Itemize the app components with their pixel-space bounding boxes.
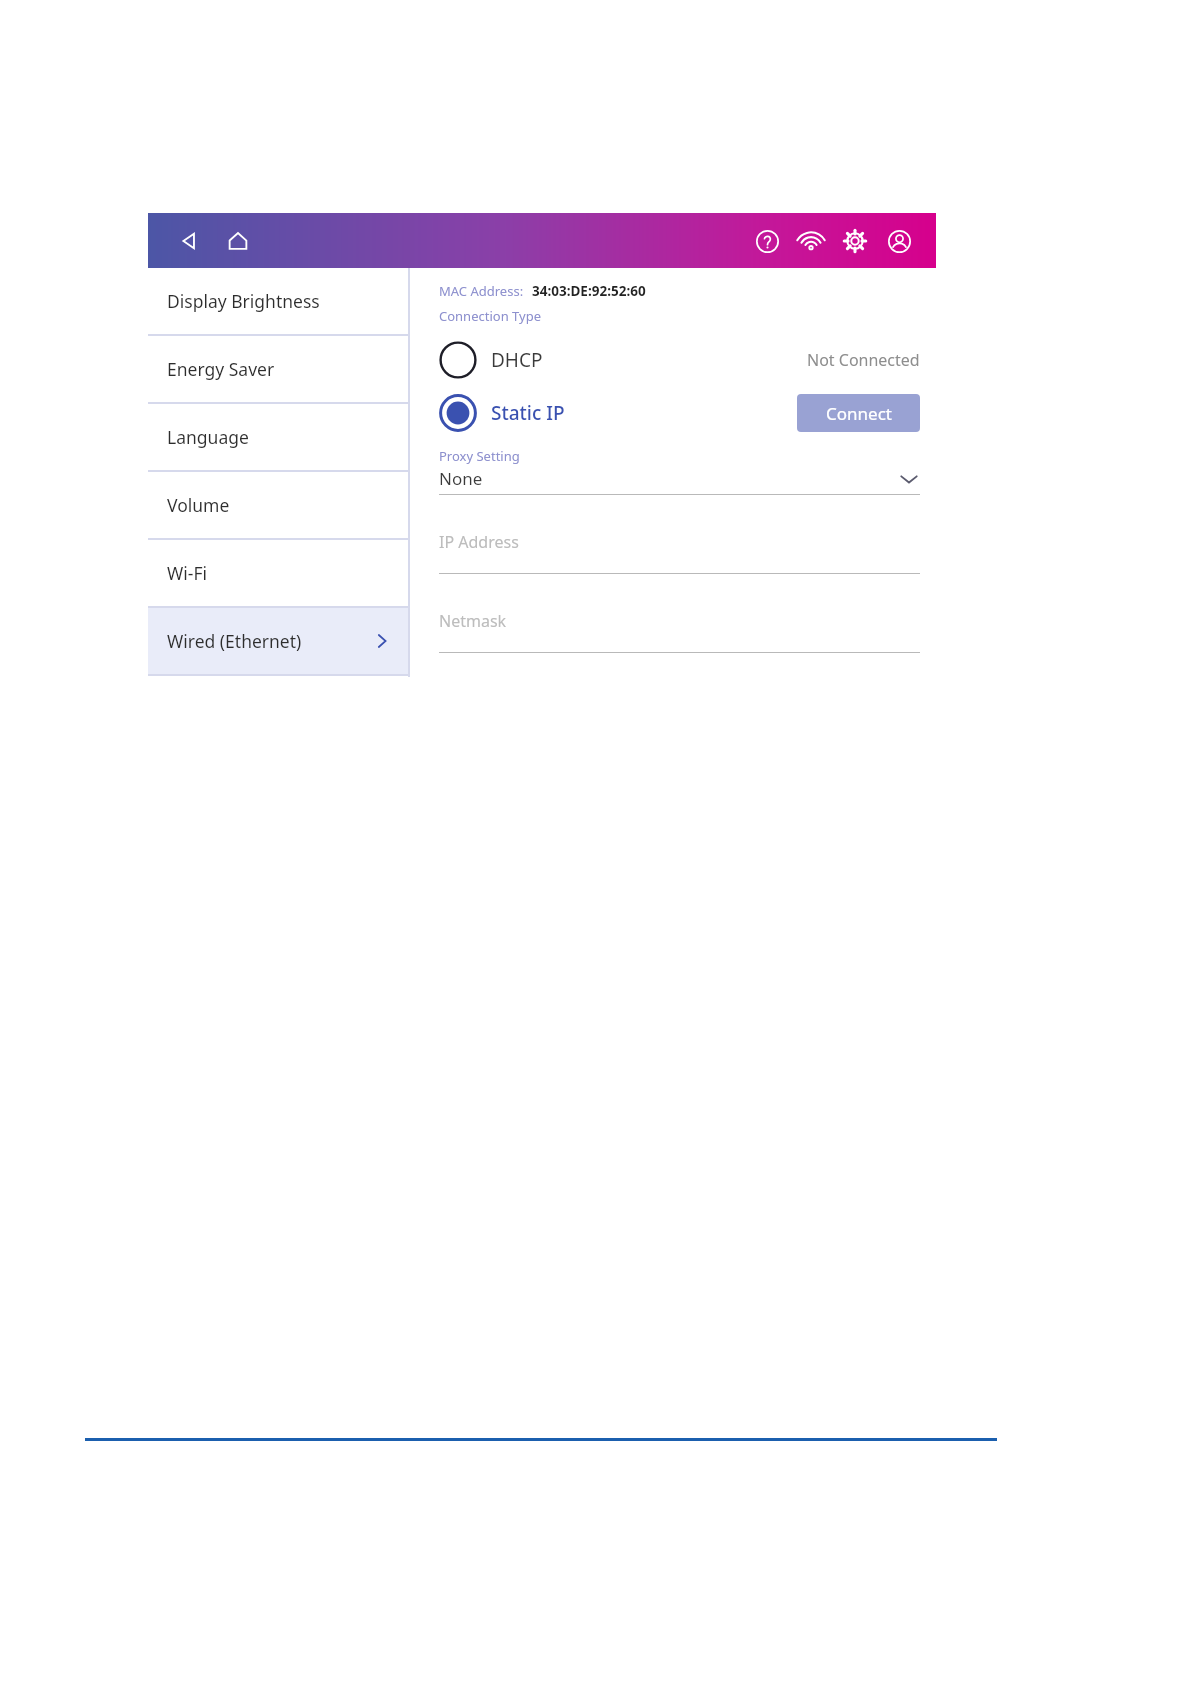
staticText: Energy Saver (167, 357, 275, 381)
button[interactable]: Static IP (439, 394, 573, 432)
staticText: Connect (826, 402, 892, 425)
button[interactable]: Help (752, 226, 782, 256)
staticText: Language (167, 425, 249, 449)
button[interactable]: Language (148, 404, 408, 470)
staticText: Static IP (491, 400, 565, 426)
staticText: DHCP (491, 347, 543, 373)
button[interactable]: IP Address (439, 531, 920, 574)
button[interactable]: Netmask (439, 610, 920, 653)
staticText: Wi-Fi (167, 561, 208, 585)
staticText: Display Brightness (167, 289, 320, 313)
staticText: Netmask (439, 610, 507, 632)
staticText: Connection Type (439, 307, 541, 325)
staticText: Volume (167, 493, 230, 517)
staticText: None (439, 467, 483, 490)
button[interactable]: Wi-Fi (796, 226, 826, 256)
button[interactable]: Volume (148, 472, 408, 538)
staticText: 34:03:DE:92:52:60 (532, 282, 646, 300)
staticText: MAC Address: (439, 282, 524, 300)
staticText: Proxy Setting (439, 447, 520, 465)
button[interactable]: Home (223, 226, 253, 256)
staticText: Not Connected (807, 349, 920, 371)
button[interactable]: Settings (840, 226, 870, 256)
button[interactable]: Energy Saver (148, 336, 408, 402)
button[interactable]: Wi-Fi (148, 540, 408, 606)
button[interactable]: DHCP (439, 341, 551, 379)
button[interactable]: Wired (Ethernet) (148, 608, 408, 674)
button[interactable]: Back (175, 226, 205, 256)
button[interactable]: Proxy Setting (439, 447, 920, 495)
button[interactable]: Display Brightness (148, 268, 408, 334)
staticText: IP Address (439, 531, 519, 553)
button[interactable]: Account (884, 226, 914, 256)
staticText: Wired (Ethernet) (167, 629, 302, 653)
button[interactable]: Connect (797, 394, 920, 432)
